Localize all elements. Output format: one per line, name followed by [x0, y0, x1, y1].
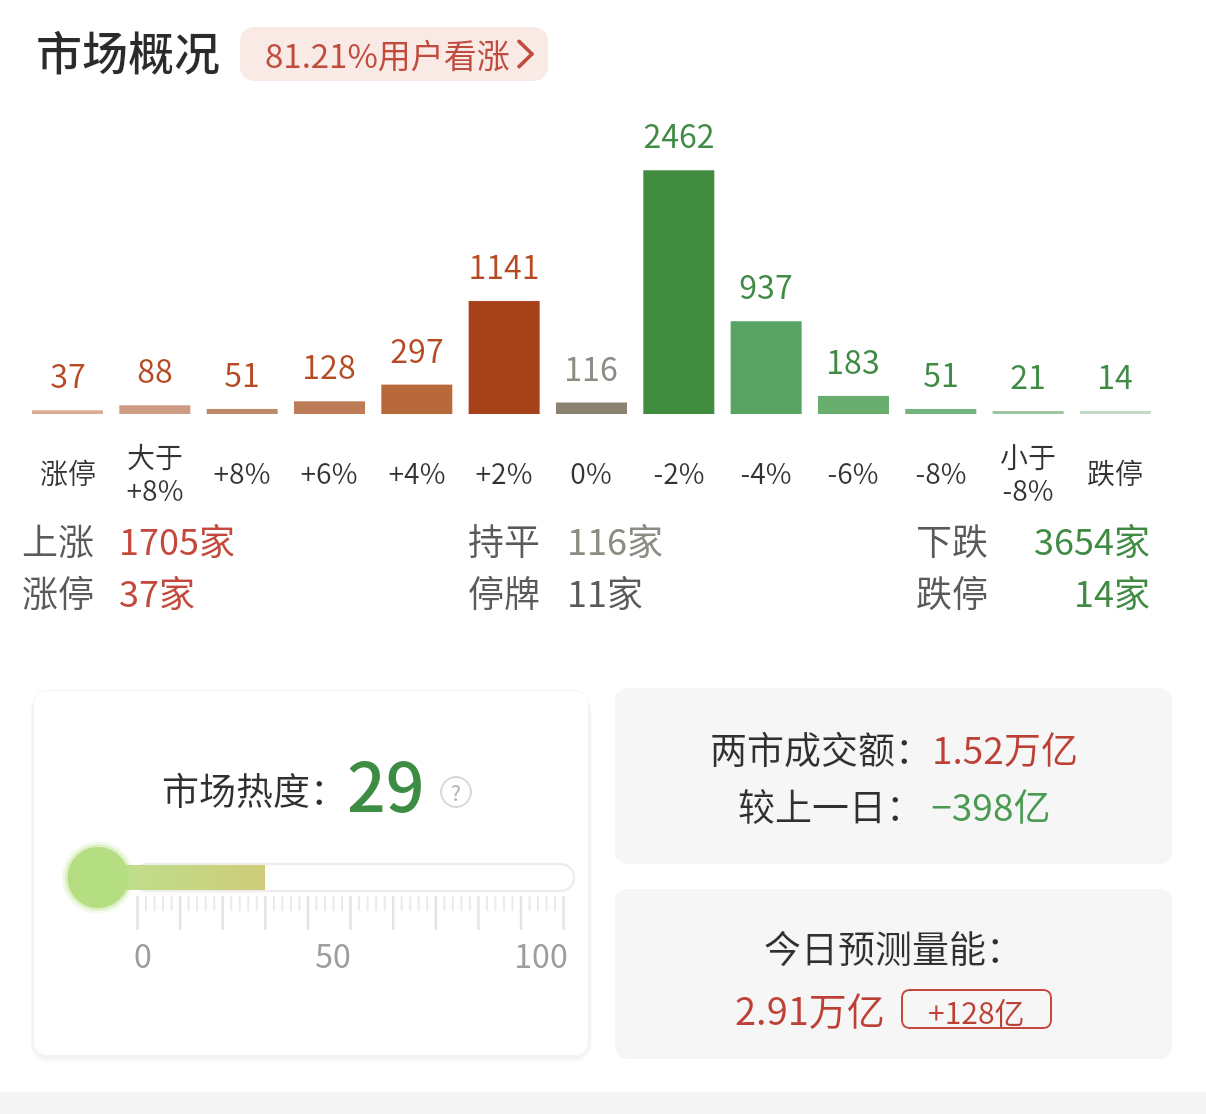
button[interactable]: 两市成交额：	[615, 688, 1172, 864]
staticText: 市场热度：	[162, 762, 347, 816]
staticText: 88	[95, 346, 215, 392]
staticText: +128亿	[928, 989, 1025, 1029]
button[interactable]: Help	[440, 776, 472, 808]
staticText: 14家	[900, 565, 1150, 617]
staticText: 14	[1055, 352, 1175, 398]
staticText: 37	[8, 351, 128, 397]
button[interactable]: 81.21%用户看涨	[240, 27, 548, 81]
staticText: 297	[357, 326, 477, 372]
staticText: 上涨	[22, 513, 95, 565]
staticText: 937	[706, 262, 826, 308]
staticText: 2.91万亿	[735, 981, 885, 1036]
staticText: 小于 -8%	[958, 436, 1098, 508]
staticText: 50	[315, 931, 351, 977]
staticText: 0%	[521, 452, 661, 493]
staticText: +8%	[172, 452, 312, 493]
button[interactable]: 今日预测量能：	[615, 889, 1172, 1059]
staticText: +6%	[259, 452, 399, 493]
staticText: -8%	[871, 452, 1011, 493]
staticText: 11家	[567, 565, 643, 617]
staticText: -6%	[783, 452, 923, 493]
staticText: 大于 +8%	[85, 436, 225, 508]
staticText: −398亿	[923, 778, 1051, 832]
staticText: 116家	[567, 513, 663, 565]
staticText: 1.52万亿	[932, 721, 1078, 775]
staticText: 涨停	[22, 565, 95, 617]
staticText: 持平	[468, 513, 541, 565]
staticText: 1705家	[119, 513, 235, 565]
staticText: 51	[182, 350, 302, 396]
staticText: +4%	[347, 452, 487, 493]
staticText: 1141	[444, 242, 564, 288]
staticText: 两市成交额：	[710, 721, 932, 775]
staticText: 29	[347, 733, 425, 831]
staticText: 3654家	[900, 513, 1150, 565]
staticText: -4%	[696, 452, 836, 493]
staticText: +2%	[434, 452, 574, 493]
staticText: 下跌	[916, 513, 989, 565]
staticText: 128	[269, 342, 389, 388]
staticText: 183	[793, 337, 913, 383]
staticText: 较上一日：	[738, 778, 923, 832]
staticText: 116	[531, 344, 651, 390]
staticText: 停牌	[468, 565, 541, 617]
staticText: 涨停	[0, 452, 138, 493]
staticText: 跌停	[1045, 452, 1185, 493]
staticText: 21	[968, 352, 1088, 398]
staticText: 市场概况	[36, 17, 220, 84]
button[interactable]: 市场热度：	[33, 690, 589, 1056]
staticText: 81.21%用户看涨	[265, 30, 510, 78]
staticText: 37家	[119, 565, 195, 617]
staticText: 0	[134, 931, 152, 977]
staticText: 2462	[619, 111, 739, 157]
staticText: 跌停	[916, 565, 989, 617]
staticText: 51	[881, 350, 1001, 396]
staticText: 100	[514, 931, 568, 977]
staticText: ?	[451, 777, 461, 807]
staticText: -2%	[609, 452, 749, 493]
staticText: 今日预测量能：	[764, 920, 1023, 974]
